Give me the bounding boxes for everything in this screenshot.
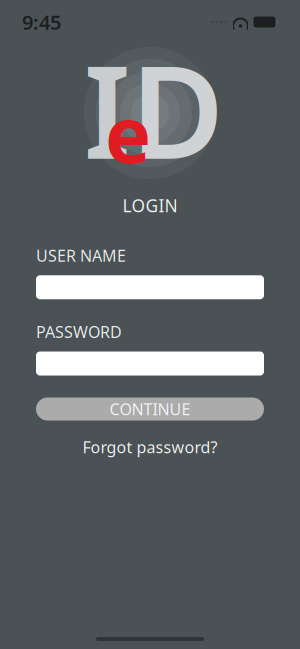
- button[interactable]: CONTINUE: [36, 397, 264, 420]
- staticText: Forgot password?: [82, 436, 217, 458]
- staticText: 9:45: [22, 9, 61, 35]
- staticText: e: [105, 82, 151, 184]
- staticText: D: [130, 24, 224, 194]
- staticText: LOGIN: [122, 194, 177, 217]
- staticText: CONTINUE: [109, 398, 190, 420]
- staticText: PASSWORD: [36, 321, 122, 342]
- staticText: I: [83, 24, 130, 194]
- button[interactable]: Forgot password?: [72, 432, 227, 462]
- staticText: USER NAME: [36, 245, 126, 266]
